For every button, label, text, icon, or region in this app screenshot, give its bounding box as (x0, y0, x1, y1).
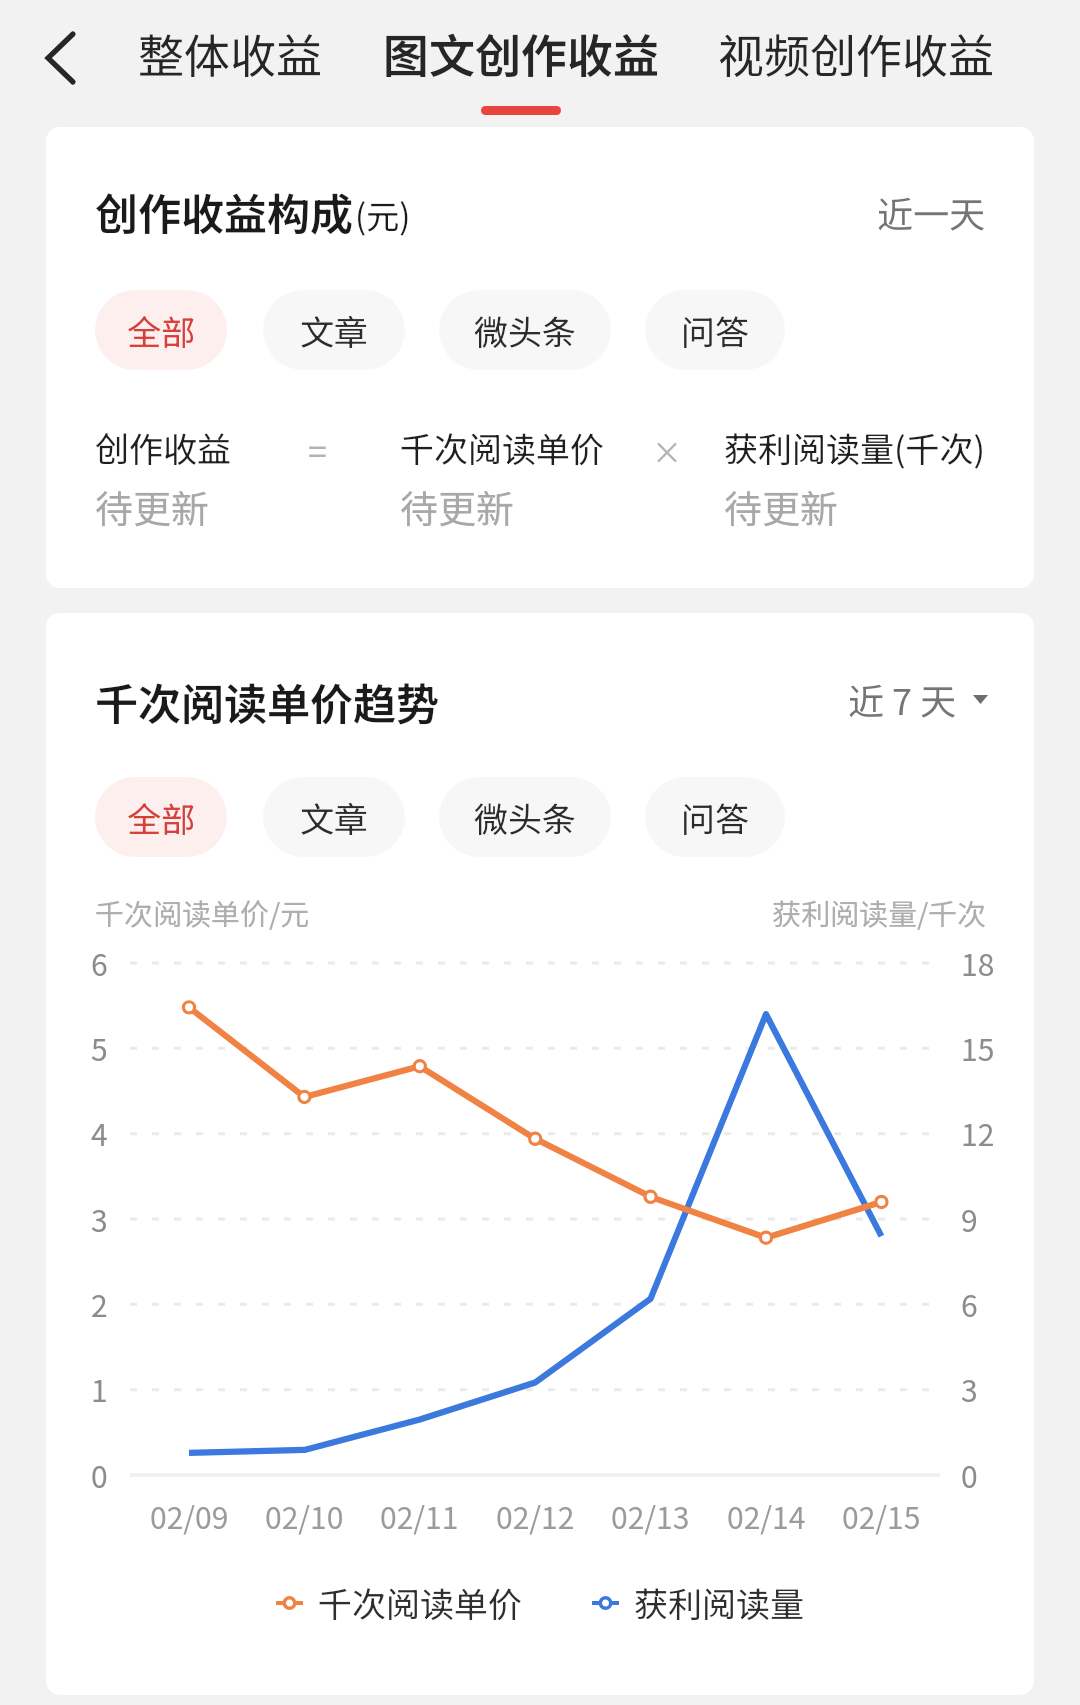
staticText: 2 (91, 1282, 108, 1325)
staticText: 02/13 (611, 1494, 690, 1537)
staticText: 15 (961, 1026, 995, 1069)
staticText: 问答 (681, 306, 749, 355)
button[interactable]: 整体收益 (138, 0, 322, 106)
staticText: 18 (961, 941, 995, 984)
staticText: × (652, 429, 682, 472)
button[interactable]: 近 7 天 (804, 673, 988, 725)
staticText: 0 (91, 1453, 108, 1496)
button[interactable]: 全部 (95, 290, 227, 370)
staticText: = (308, 425, 327, 474)
staticText: 千次阅读单价 (318, 1578, 522, 1627)
staticText: 视频创作收益 (718, 20, 994, 87)
staticText: 02/09 (150, 1494, 229, 1537)
staticText: 3 (961, 1367, 978, 1410)
staticText: 图文创作收益 (383, 20, 659, 87)
staticText: 0 (961, 1453, 978, 1496)
staticText: 全部 (127, 793, 195, 842)
button[interactable]: 微头条 (439, 290, 611, 370)
staticText: 待更新 (95, 479, 210, 534)
staticText: 获利阅读量(千次) (724, 423, 985, 472)
staticText: 5 (91, 1026, 108, 1069)
staticText: 整体收益 (138, 20, 322, 87)
staticText: 02/14 (727, 1494, 806, 1537)
button[interactable]: Back (19, 12, 109, 102)
button[interactable]: 视频创作收益 (718, 0, 994, 106)
staticText: 微头条 (474, 793, 576, 842)
staticText: 文章 (300, 306, 368, 355)
button[interactable]: 微头条 (439, 777, 611, 857)
staticText: 获利阅读量 (634, 1578, 804, 1627)
button[interactable]: 问答 (645, 290, 785, 370)
staticText: 02/10 (265, 1494, 344, 1537)
staticText: 千次阅读单价趋势 (95, 670, 439, 732)
staticText: 02/12 (496, 1494, 575, 1537)
staticText: 6 (961, 1282, 978, 1325)
staticText: 02/11 (380, 1494, 459, 1537)
staticText: 近 7 天 (848, 673, 957, 725)
staticText: 获利阅读量/千次 (772, 891, 987, 933)
staticText: 待更新 (724, 479, 839, 534)
staticText: 微头条 (474, 306, 576, 355)
button[interactable]: 文章 (263, 777, 405, 857)
staticText: 文章 (300, 793, 368, 842)
button[interactable]: 图文创作收益 (383, 0, 659, 115)
button[interactable]: 文章 (263, 290, 405, 370)
staticText: 创作收益构成 (95, 180, 353, 242)
staticText: 问答 (681, 793, 749, 842)
staticText: 全部 (127, 306, 195, 355)
staticText: 1 (91, 1367, 108, 1410)
staticText: 待更新 (400, 479, 515, 534)
staticText: 千次阅读单价/元 (95, 891, 310, 933)
staticText: 近一天 (877, 186, 986, 238)
staticText: 创作收益 (95, 423, 231, 472)
button[interactable]: 全部 (95, 777, 227, 857)
staticText: 6 (91, 941, 108, 984)
staticText: 02/15 (842, 1494, 921, 1537)
staticText: 4 (91, 1111, 108, 1154)
staticText: 9 (961, 1197, 978, 1240)
staticText: 12 (961, 1111, 995, 1154)
staticText: 千次阅读单价 (400, 423, 604, 472)
staticText: (元) (355, 191, 411, 239)
staticText: 3 (91, 1197, 108, 1240)
button[interactable]: 问答 (645, 777, 785, 857)
